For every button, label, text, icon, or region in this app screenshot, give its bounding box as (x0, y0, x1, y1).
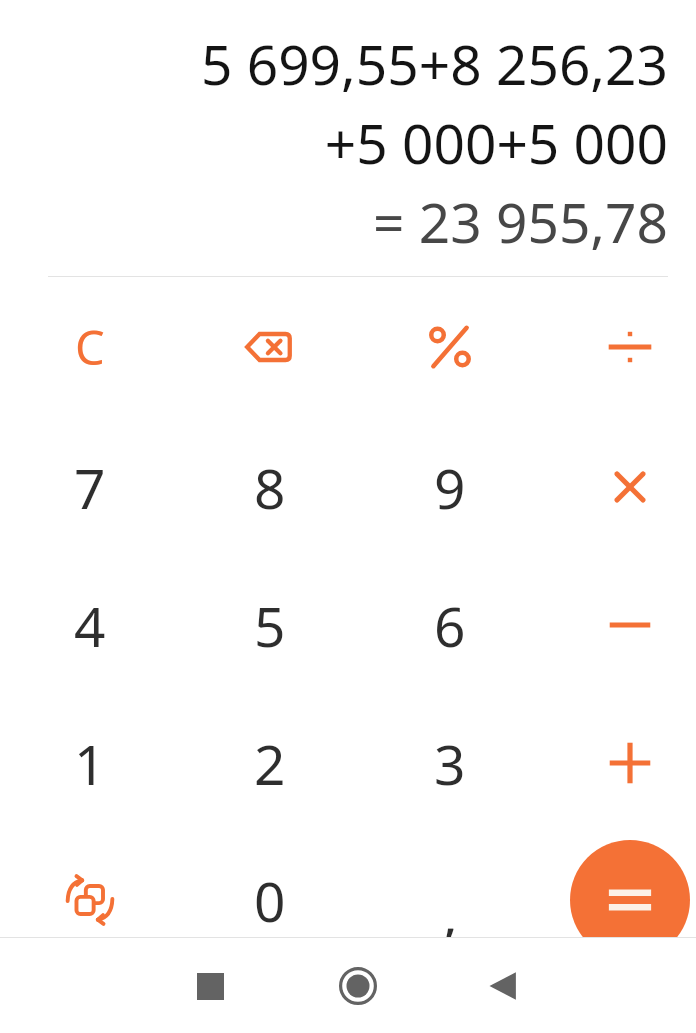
staticText: 1 (74, 726, 106, 801)
button[interactable]: 6 (368, 558, 532, 692)
staticText: 4 (74, 588, 106, 663)
staticText: 5 (254, 588, 286, 663)
staticText: 9 (434, 450, 466, 525)
button[interactable]: Recent apps (172, 948, 248, 1024)
staticText: +5 000+5 000 (324, 105, 668, 180)
button[interactable]: Back (465, 948, 541, 1024)
button[interactable]: Home (320, 948, 396, 1024)
button[interactable]: C (8, 280, 172, 414)
button[interactable]: Backspace (188, 280, 352, 414)
button[interactable]: 4 (8, 558, 172, 692)
button[interactable]: 1 (8, 696, 172, 830)
button[interactable]: 8 (188, 420, 352, 554)
button[interactable]: Convert units (8, 833, 172, 967)
staticText: , (443, 876, 458, 951)
button[interactable]: 0 (188, 833, 352, 967)
button[interactable]: , (368, 833, 532, 967)
button[interactable]: 7 (8, 420, 172, 554)
button[interactable]: Plus (548, 696, 696, 830)
staticText: 5 699,55+8 256,23 (200, 26, 668, 101)
staticText: 2 (254, 726, 286, 801)
button[interactable]: 3 (368, 696, 532, 830)
staticText: C (75, 315, 105, 379)
button[interactable]: 5 (188, 558, 352, 692)
staticText: 3 (434, 726, 466, 801)
staticText: 7 (74, 450, 106, 525)
staticText: 8 (254, 450, 286, 525)
staticText: = 23 955,78 (372, 184, 668, 259)
button[interactable]: 2 (188, 696, 352, 830)
button[interactable]: Multiply (548, 420, 696, 554)
staticText: 6 (434, 588, 466, 663)
button[interactable]: 9 (368, 420, 532, 554)
staticText: 0 (254, 863, 286, 938)
button[interactable]: Divide (548, 280, 696, 414)
button[interactable]: Percent (368, 280, 532, 414)
button[interactable]: Equals (548, 833, 696, 967)
button[interactable]: Minus (548, 558, 696, 692)
